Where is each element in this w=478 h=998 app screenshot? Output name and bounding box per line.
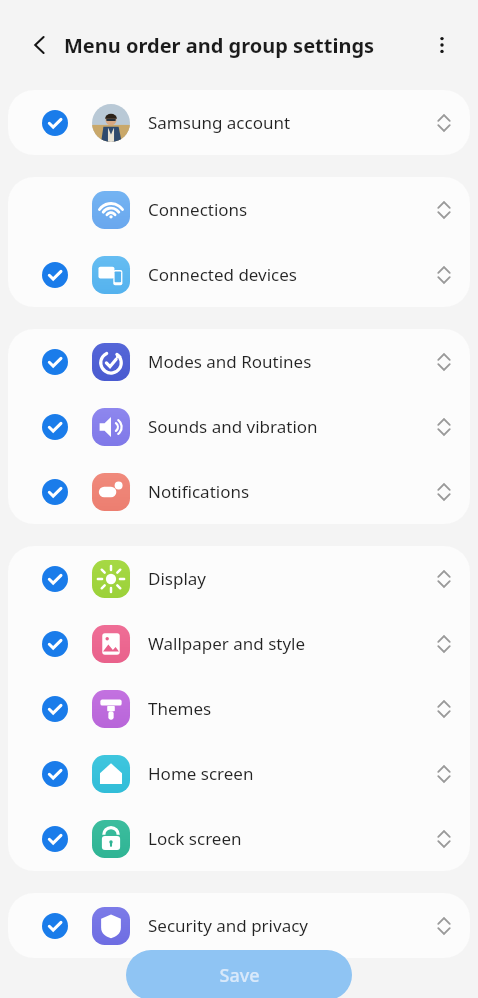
staticText: Sounds and vibration	[148, 415, 318, 438]
staticText: Samsung account	[148, 111, 291, 134]
staticText: Security and privacy	[148, 914, 309, 937]
button[interactable]: Lock screen	[8, 806, 470, 871]
staticText: Modes and Routines	[148, 350, 312, 373]
button[interactable]: Reorder	[424, 906, 464, 946]
button[interactable]: Reorder	[424, 342, 464, 382]
button[interactable]: Wallpaper and style	[8, 611, 470, 676]
button[interactable]: Reorder	[424, 255, 464, 295]
staticText: Menu order and group settings	[64, 32, 375, 59]
button[interactable]: Sounds and vibration	[8, 394, 470, 459]
staticText: Home screen	[148, 762, 254, 785]
staticText: Save	[219, 963, 260, 988]
button[interactable]: Reorder	[424, 624, 464, 664]
button[interactable]: Save	[126, 950, 352, 998]
button[interactable]: Connections	[8, 177, 470, 242]
button[interactable]: Notifications	[8, 459, 470, 524]
button[interactable]: Back	[18, 23, 62, 67]
button[interactable]: Modes and Routines	[8, 329, 470, 394]
button[interactable]: Reorder	[424, 754, 464, 794]
staticText: Wallpaper and style	[148, 632, 306, 655]
staticText: Connections	[148, 198, 248, 221]
staticText: Display	[148, 567, 206, 590]
button[interactable]: Reorder	[424, 559, 464, 599]
button[interactable]: Security and privacy	[8, 893, 470, 958]
button[interactable]: Reorder	[424, 103, 464, 143]
button[interactable]: Reorder	[424, 407, 464, 447]
staticText: Themes	[148, 697, 212, 720]
staticText: Lock screen	[148, 827, 242, 850]
button[interactable]: More options	[420, 23, 464, 67]
button[interactable]: Connected devices	[8, 242, 470, 307]
button[interactable]: Home screen	[8, 741, 470, 806]
staticText: Notifications	[148, 480, 250, 503]
button[interactable]: Samsung account	[8, 90, 470, 155]
button[interactable]: Reorder	[424, 689, 464, 729]
button[interactable]: Reorder	[424, 819, 464, 859]
button[interactable]: Reorder	[424, 472, 464, 512]
button[interactable]: Display	[8, 546, 470, 611]
staticText: Connected devices	[148, 263, 298, 286]
button[interactable]: Themes	[8, 676, 470, 741]
button[interactable]: Reorder	[424, 190, 464, 230]
